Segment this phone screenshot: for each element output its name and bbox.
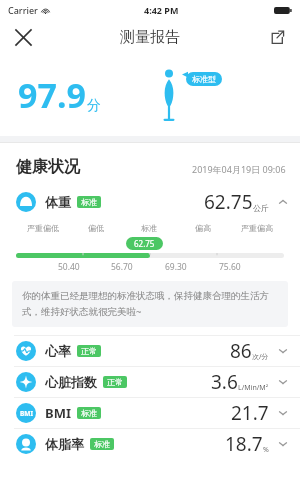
staticText: 标准 bbox=[81, 408, 97, 418]
button[interactable]: 体脂率 bbox=[0, 429, 300, 459]
staticText: 2019年04月19日 09:06 bbox=[192, 163, 286, 175]
staticText: 69.30 bbox=[165, 261, 187, 273]
other: Expand bbox=[278, 346, 288, 356]
other: Expand bbox=[278, 439, 288, 449]
staticText: 体重 bbox=[45, 194, 71, 210]
staticText: 偏低 bbox=[88, 223, 104, 233]
staticText: Carrier bbox=[8, 4, 38, 16]
staticText: 心脏指数 bbox=[45, 374, 97, 390]
staticText: 你的体重已经是理想的标准状态哦，保持健康合理的生活方式，维持好状态就很完美啦~ bbox=[22, 290, 278, 318]
staticText: % bbox=[263, 445, 269, 455]
staticText: 86 bbox=[230, 338, 252, 364]
button[interactable]: 心脏指数 bbox=[0, 367, 300, 397]
button[interactable]: Share bbox=[262, 22, 292, 52]
staticText: 75.60 bbox=[219, 261, 241, 273]
staticText: 体脂率 bbox=[45, 436, 84, 452]
other: Expand bbox=[278, 408, 288, 418]
staticText: 次/分 bbox=[252, 352, 269, 362]
staticText: BMI bbox=[45, 404, 71, 422]
staticText: L/Min/M² bbox=[238, 383, 269, 393]
other: Expand bbox=[278, 377, 288, 387]
staticText: 健康状况 bbox=[16, 157, 80, 177]
staticText: 50.40 bbox=[58, 261, 80, 273]
staticText: BMI bbox=[20, 409, 33, 418]
staticText: 严重偏高 bbox=[241, 223, 273, 233]
staticText: 21.7 bbox=[231, 400, 269, 426]
button[interactable]: 体重 bbox=[0, 185, 300, 219]
staticText: 偏高 bbox=[195, 223, 211, 233]
staticText: 心率 bbox=[45, 343, 71, 359]
staticText: 4:42 PM bbox=[144, 4, 179, 16]
staticText: 正常 bbox=[81, 346, 97, 356]
staticText: 97.9 bbox=[18, 72, 86, 118]
staticText: 公斤 bbox=[253, 203, 269, 213]
staticText: 标准 bbox=[81, 197, 97, 207]
staticText: 62.75 bbox=[204, 189, 253, 215]
staticText: 分 bbox=[87, 97, 101, 115]
other: Collapse bbox=[278, 197, 288, 207]
staticText: 18.7 bbox=[225, 431, 263, 457]
staticText: 56.70 bbox=[111, 261, 133, 273]
staticText: 62.75 bbox=[134, 238, 155, 249]
button[interactable]: 心率 bbox=[0, 336, 300, 366]
staticText: 标准 bbox=[141, 223, 157, 233]
staticText: 3.6 bbox=[211, 369, 238, 395]
staticText: 严重偏低 bbox=[27, 223, 59, 233]
staticText: 测量报告 bbox=[120, 28, 180, 47]
button[interactable]: BMI bbox=[0, 398, 300, 428]
staticText: 标准 bbox=[94, 439, 110, 449]
button[interactable]: Close bbox=[8, 22, 38, 52]
staticText: 正常 bbox=[107, 377, 123, 387]
staticText: 标准型 bbox=[192, 74, 216, 84]
